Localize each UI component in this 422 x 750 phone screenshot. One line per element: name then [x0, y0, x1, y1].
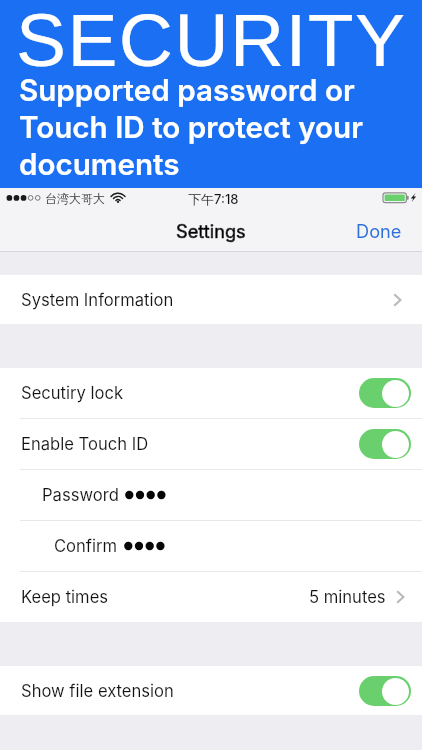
- button[interactable]: Password: [0, 470, 422, 520]
- staticText: Settings: [176, 220, 246, 242]
- button[interactable]: Toggle: [359, 429, 411, 459]
- staticText: Confirm: [54, 536, 118, 556]
- staticText: Settings: [176, 220, 246, 242]
- button[interactable]: Show file extension: [0, 666, 422, 715]
- button[interactable]: Keep times: [0, 572, 422, 622]
- button[interactable]: System Information: [0, 275, 422, 324]
- staticText: SECURITY: [16, 0, 407, 82]
- button[interactable]: Confirm: [0, 521, 422, 571]
- staticText: Done: [356, 220, 402, 242]
- staticText: System Information: [21, 290, 174, 310]
- button[interactable]: Done: [336, 215, 422, 247]
- staticText: 5 minutes: [309, 587, 386, 607]
- button[interactable]: Toggle: [359, 676, 411, 706]
- staticText: Supported password or Touch ID to protec…: [19, 72, 363, 182]
- staticText: Secutiry lock: [21, 383, 124, 403]
- staticText: Password: [42, 485, 119, 505]
- staticText: 台湾大哥大: [45, 191, 105, 206]
- button[interactable]: Toggle: [359, 378, 411, 408]
- staticText: 下午7:18: [188, 191, 239, 207]
- staticText: Enable Touch ID: [21, 434, 149, 454]
- staticText: Keep times: [21, 587, 109, 607]
- staticText: Show file extension: [21, 681, 174, 701]
